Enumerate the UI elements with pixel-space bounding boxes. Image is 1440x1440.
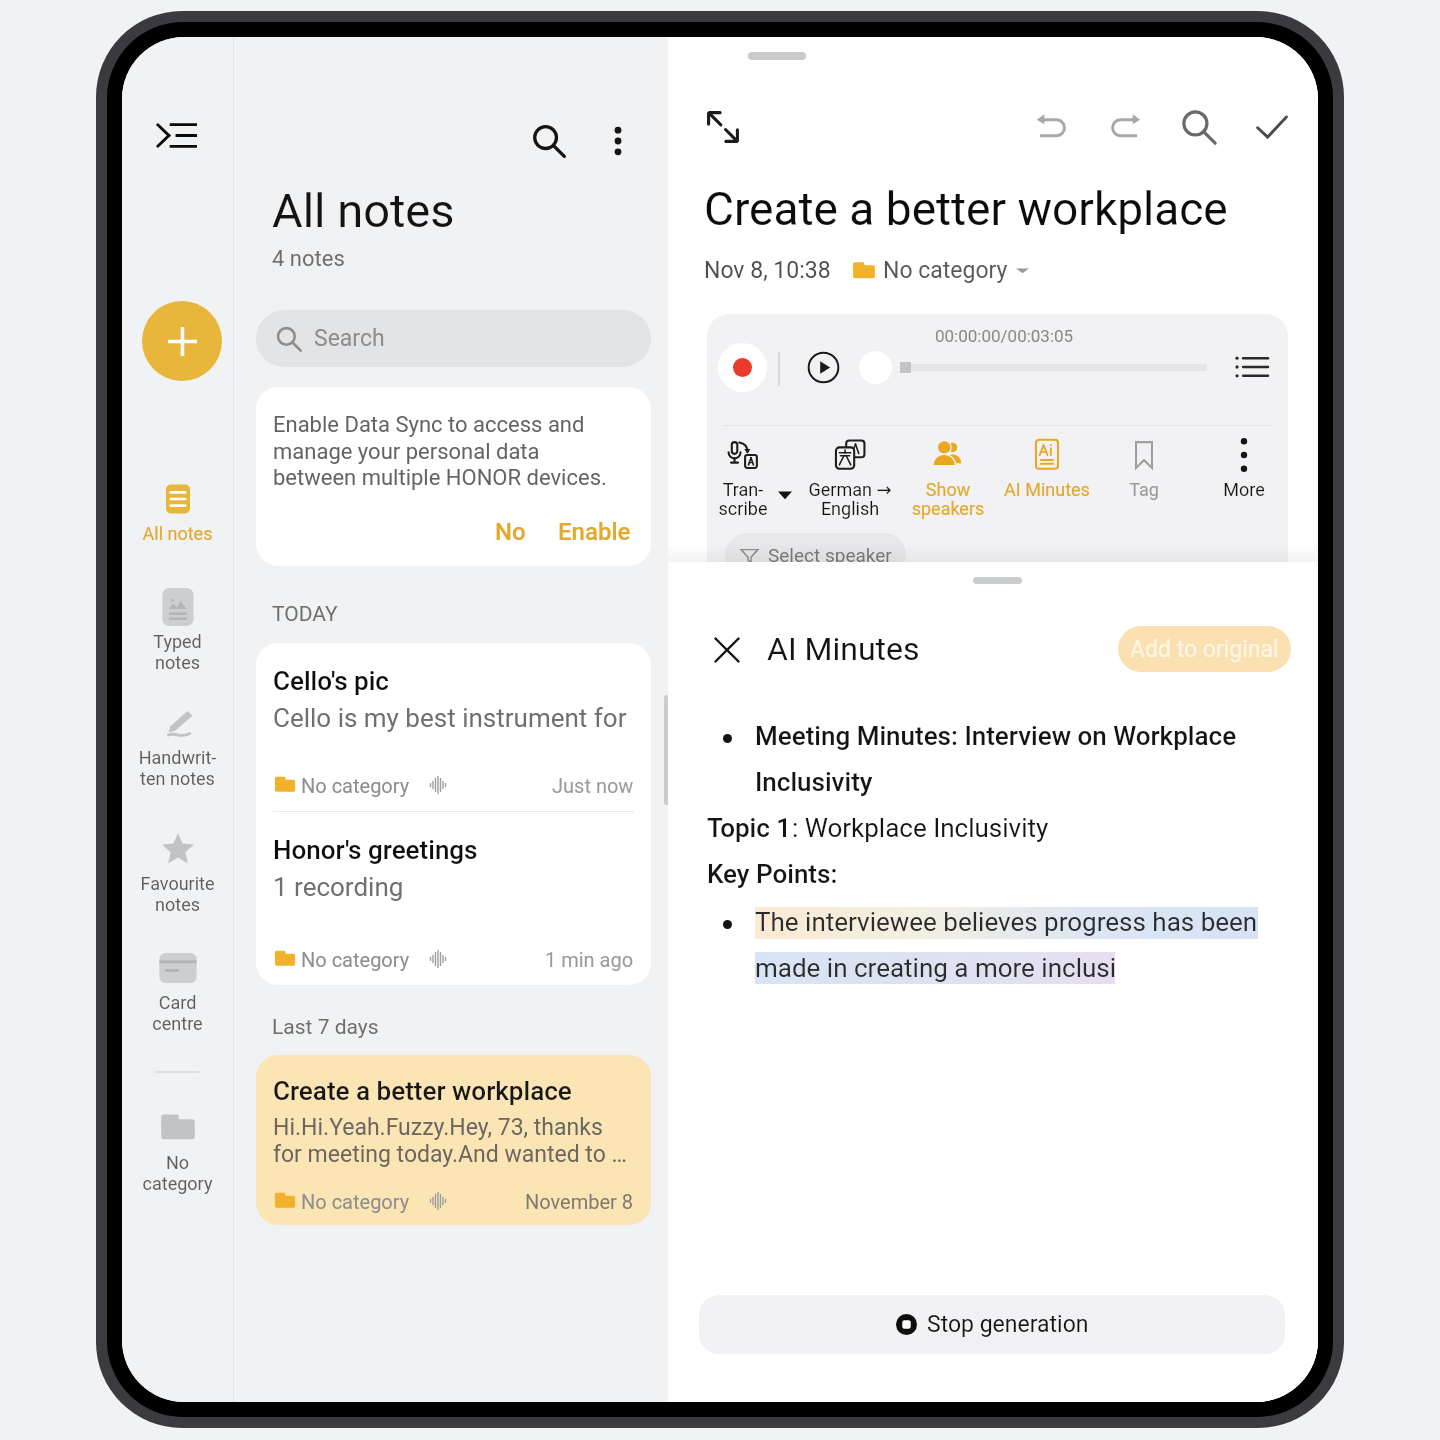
staticText: No category: [122, 1152, 233, 1195]
button[interactable]: Card centre: [122, 948, 233, 1035]
button[interactable]: Transcript list: [1232, 347, 1272, 387]
staticText: Add to original: [1130, 636, 1279, 663]
button[interactable]: German → English: [800, 436, 900, 519]
button[interactable]: Enable: [554, 514, 635, 550]
staticText: Typed notes: [122, 631, 233, 674]
staticText: Stop generation: [927, 1311, 1089, 1338]
staticText: The interviewee believes progress has be…: [755, 907, 1275, 984]
button[interactable]: No: [487, 514, 534, 550]
button[interactable]: Handwrit- ten notes: [122, 703, 233, 790]
button[interactable]: Favourite notes: [122, 829, 233, 916]
button[interactable]: Undo: [1024, 99, 1080, 155]
button[interactable]: No category: [122, 1108, 233, 1195]
staticText: Enable Data Sync to access and manage yo…: [273, 412, 607, 490]
button[interactable]: Search: [521, 113, 577, 169]
staticText: Tag: [1094, 479, 1194, 500]
staticText: Cello's pic: [273, 666, 389, 696]
staticText: Handwrit- ten notes: [122, 747, 233, 790]
staticText: Just now: [552, 774, 634, 797]
button[interactable]: Collapse menu: [149, 107, 205, 163]
button[interactable]: Cello's pic: [256, 643, 651, 811]
staticText: No category: [883, 257, 1008, 284]
staticText: Show speakers: [898, 479, 998, 519]
staticText: Favourite notes: [122, 873, 233, 916]
staticText: Key Points:: [707, 859, 838, 889]
staticText: Hi.Hi.Yeah.Fuzzy.Hey, 73, thanks for mee…: [273, 1114, 627, 1167]
button[interactable]: Search: [1171, 99, 1227, 155]
staticText: Topic 1: [707, 813, 792, 843]
staticText: 4 notes: [272, 246, 345, 272]
staticText: More: [1194, 479, 1288, 500]
staticText: German → English: [800, 479, 900, 519]
button[interactable]: More options: [590, 113, 646, 169]
staticText: Meeting Minutes: Interview on Workplace …: [755, 721, 1265, 798]
button[interactable]: Record: [718, 343, 767, 392]
staticText: Create a better workplace: [704, 182, 1228, 236]
staticText: All notes: [272, 183, 455, 238]
button[interactable]: Show speakers: [898, 436, 998, 519]
button[interactable]: Stop generation: [699, 1295, 1285, 1354]
staticText: Select speaker: [768, 544, 892, 566]
staticText: Cello is my best instrument for: [273, 703, 627, 733]
staticText: Nov 8, 10:38: [704, 257, 831, 284]
button[interactable]: Enable Data Sync to access and manage yo…: [256, 387, 651, 566]
button[interactable]: No category: [851, 251, 1029, 290]
button[interactable]: Expand: [695, 99, 751, 155]
button[interactable]: All notes: [122, 479, 233, 544]
button[interactable]: Redo: [1097, 99, 1153, 155]
button[interactable]: Tag: [1094, 436, 1194, 500]
staticText: No: [495, 518, 526, 546]
staticText: Card centre: [122, 992, 233, 1035]
button[interactable]: More: [1194, 436, 1288, 500]
button[interactable]: Typed notes: [122, 587, 233, 674]
staticText: Honor's greetings: [273, 835, 478, 865]
button[interactable]: Add to original: [1118, 626, 1291, 672]
staticText: : Workplace Inclusivity: [792, 813, 1049, 843]
staticText: November 8: [525, 1190, 634, 1213]
button[interactable]: AI Minutes: [997, 436, 1097, 500]
button[interactable]: Create a better workplace: [256, 1055, 651, 1225]
button[interactable]: Search: [256, 310, 651, 367]
button[interactable]: Select speaker: [725, 533, 906, 577]
staticText: Create a better workplace: [273, 1076, 572, 1106]
staticText: 1 recording: [273, 872, 404, 902]
staticText: AI Minutes: [997, 479, 1097, 500]
button[interactable]: Honor's greetings: [256, 812, 651, 985]
button[interactable]: Done: [1244, 99, 1300, 155]
staticText: Last 7 days: [272, 1015, 379, 1040]
staticText: Tran- scribe: [707, 479, 793, 519]
staticText: No category: [301, 774, 410, 797]
button[interactable]: Tran- scribe: [707, 436, 793, 519]
staticText: 1 min ago: [545, 948, 634, 971]
staticText: All notes: [122, 523, 233, 544]
staticText: AI Minutes: [767, 630, 920, 668]
staticText: No category: [301, 1190, 410, 1213]
staticText: Search: [314, 325, 385, 352]
staticText: No category: [301, 948, 410, 971]
button[interactable]: Close: [701, 624, 753, 676]
staticText: TODAY: [272, 602, 338, 627]
staticText: 00:00:00/00:03:05: [935, 326, 1074, 346]
staticText: Enable: [558, 518, 631, 546]
button[interactable]: Play: [807, 351, 840, 384]
button[interactable]: New note: [142, 301, 222, 381]
button[interactable]: Playback position: [859, 351, 892, 384]
